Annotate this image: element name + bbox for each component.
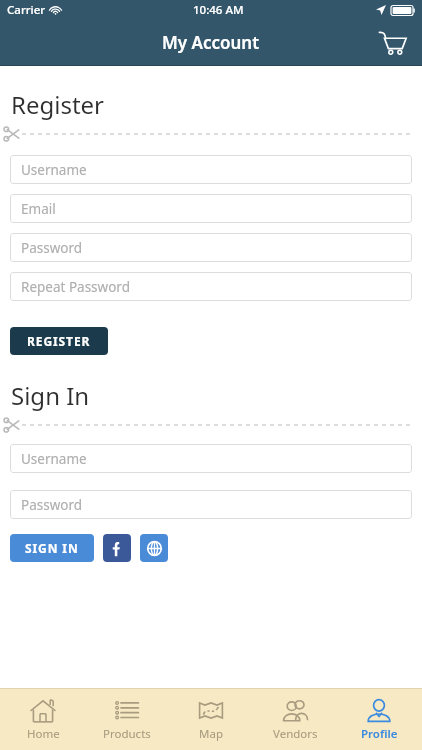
button[interactable]: Profile xyxy=(338,688,420,750)
button[interactable]: REGISTER xyxy=(10,327,108,355)
staticText: 10:46 AM xyxy=(193,2,244,18)
staticText: Sign In xyxy=(11,379,90,412)
staticText: REGISTER xyxy=(27,333,91,349)
staticText: Vendors xyxy=(273,726,318,742)
staticText: Home xyxy=(27,726,60,742)
button[interactable]: Username xyxy=(10,444,412,473)
staticText: Password xyxy=(21,496,83,514)
staticText: Products xyxy=(103,726,151,742)
button[interactable]: Sign in with Facebook xyxy=(103,534,131,562)
button[interactable]: Vendors xyxy=(254,688,336,750)
staticText: SIGN IN xyxy=(25,540,79,556)
staticText: Email xyxy=(21,200,56,218)
staticText: Repeat Password xyxy=(21,278,130,296)
staticText: Register xyxy=(11,88,105,121)
button[interactable]: Password xyxy=(10,233,412,262)
staticText: Password xyxy=(21,239,83,257)
button[interactable]: Sign in with Google xyxy=(140,534,168,562)
button[interactable]: Password xyxy=(10,490,412,519)
button[interactable]: Email xyxy=(10,194,412,223)
button[interactable]: Products xyxy=(86,688,168,750)
button[interactable]: Home xyxy=(2,688,84,750)
button[interactable]: Repeat Password xyxy=(10,272,412,301)
button[interactable]: SIGN IN xyxy=(10,534,94,562)
staticText: Profile xyxy=(361,726,398,742)
staticText: Username xyxy=(21,161,87,179)
button[interactable]: Username xyxy=(10,155,412,184)
button[interactable]: Cart xyxy=(372,23,412,63)
staticText: My Account xyxy=(162,31,260,54)
button[interactable]: Map xyxy=(170,688,252,750)
staticText: Map xyxy=(199,726,223,742)
staticText: Carrier xyxy=(7,2,46,18)
staticText: Username xyxy=(21,450,87,468)
